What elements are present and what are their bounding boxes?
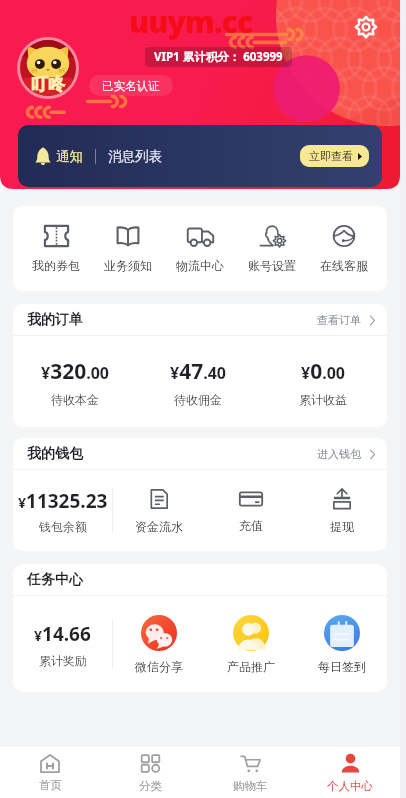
button[interactable]: 分类 xyxy=(100,747,200,798)
staticText: 分类 xyxy=(139,779,162,793)
button[interactable]: 已实名认证 xyxy=(102,75,160,96)
button[interactable]: 查看订单 xyxy=(317,309,375,331)
staticText: 个人中心 xyxy=(327,779,373,793)
staticText: 首页 xyxy=(39,778,62,792)
button[interactable]: ¥0.00 xyxy=(259,357,387,407)
button[interactable]: 个人中心 xyxy=(300,747,400,798)
button[interactable]: 通知 xyxy=(18,125,382,187)
staticText: 我的订单 xyxy=(27,311,83,329)
button[interactable]: 微信分享 xyxy=(113,615,205,674)
staticText: 立即查看 xyxy=(309,149,353,163)
staticText: 账号设置 xyxy=(248,258,296,273)
staticText: 叮咚 xyxy=(31,74,65,95)
button[interactable]: 资金流水 xyxy=(113,487,205,534)
staticText: ¥0.00 xyxy=(301,357,345,386)
button[interactable]: 充值 xyxy=(205,488,296,533)
staticText: 业务须知 xyxy=(104,258,152,273)
staticText: 我的券包 xyxy=(32,258,80,273)
button[interactable]: Settings xyxy=(354,15,378,39)
button[interactable]: 业务须知 xyxy=(99,216,157,281)
button[interactable]: 购物车 xyxy=(200,747,300,798)
staticText: 查看订单 xyxy=(317,313,361,327)
button[interactable]: ¥11325.23 xyxy=(13,488,112,534)
button[interactable]: 账号设置 xyxy=(243,216,301,281)
staticText: 微信分享 xyxy=(135,659,183,674)
staticText: ¥320.00 xyxy=(41,357,109,386)
staticText: 产品推广 xyxy=(227,659,275,674)
staticText: 待收佣金 xyxy=(174,392,222,407)
button[interactable]: ¥320.00 xyxy=(13,357,136,407)
staticText: 我的钱包 xyxy=(27,445,83,463)
staticText: 任务中心 xyxy=(27,571,83,589)
button[interactable]: 我的券包 xyxy=(27,216,85,281)
staticText: 待收本金 xyxy=(51,392,99,407)
button[interactable]: Avatar xyxy=(20,40,76,96)
staticText: uuym.cc xyxy=(129,1,253,42)
staticText: ¥11325.23 xyxy=(18,488,108,514)
staticText: 物流中心 xyxy=(176,258,224,273)
staticText: ¥47.40 xyxy=(170,357,226,386)
button[interactable]: 提现 xyxy=(296,487,387,534)
button[interactable]: ¥47.40 xyxy=(136,357,259,407)
staticText: 充值 xyxy=(239,518,263,533)
staticText: 累计收益 xyxy=(299,392,347,407)
button[interactable]: 在线客服 xyxy=(315,216,373,281)
button[interactable]: 进入钱包 xyxy=(317,443,375,465)
button[interactable]: 首页 xyxy=(0,747,100,798)
staticText: 进入钱包 xyxy=(317,447,361,461)
button[interactable]: 产品推广 xyxy=(205,615,296,674)
button[interactable]: 每日签到 xyxy=(296,615,387,674)
staticText: 资金流水 xyxy=(135,519,183,534)
staticText: 通知 xyxy=(56,148,83,165)
staticText: 购物车 xyxy=(233,779,268,793)
button[interactable]: ¥14.66 xyxy=(13,621,112,668)
button[interactable]: 物流中心 xyxy=(171,216,229,281)
staticText: 消息列表 xyxy=(108,148,162,165)
staticText: 提现 xyxy=(330,519,354,534)
staticText: VIP1 累计积分： 603999 xyxy=(154,49,283,65)
staticText: 已实名认证 xyxy=(102,79,160,93)
button[interactable]: 立即查看 xyxy=(309,149,362,163)
staticText: 每日签到 xyxy=(318,659,366,674)
staticText: 在线客服 xyxy=(320,258,368,273)
staticText: ¥14.66 xyxy=(34,621,91,647)
staticText: 累计奖励 xyxy=(39,653,87,668)
staticText: 钱包余额 xyxy=(39,519,87,534)
